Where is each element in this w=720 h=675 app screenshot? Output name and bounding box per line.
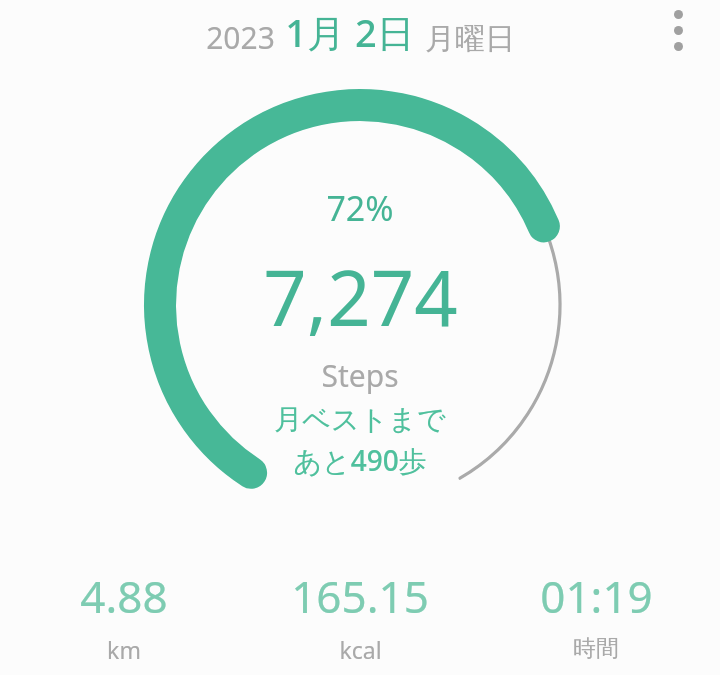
staticText: kcal [339, 634, 382, 665]
staticText: 時間 [573, 634, 619, 663]
staticText: 01:19 [540, 566, 653, 626]
staticText: 月ベストまで [274, 402, 446, 437]
staticText: 7,274 [263, 245, 458, 349]
button[interactable]: More options [650, 2, 706, 58]
staticText: km [107, 634, 141, 665]
staticText: Steps [321, 355, 399, 396]
staticText: 165.15 [291, 566, 429, 626]
staticText: 1月 2日 [285, 6, 415, 58]
staticText: 月曜日 [425, 20, 515, 58]
button[interactable]: 4.88 [6, 562, 242, 669]
staticText: あと490歩 [293, 441, 427, 479]
staticText: 72% [326, 185, 394, 231]
button[interactable]: 01:19 [478, 562, 714, 667]
button[interactable]: 165.15 [242, 562, 478, 669]
staticText: 4.88 [80, 566, 168, 626]
staticText: 2023 [206, 17, 275, 58]
